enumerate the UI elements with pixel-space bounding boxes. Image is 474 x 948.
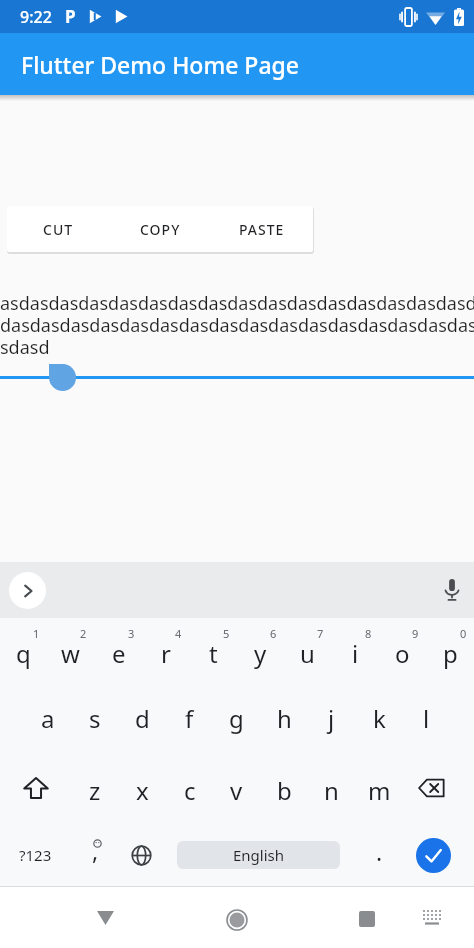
button[interactable]: j — [308, 690, 355, 746]
staticText: l — [423, 702, 430, 735]
button[interactable]: c — [166, 762, 213, 818]
button[interactable]: CUT — [7, 206, 109, 252]
staticText: w — [61, 637, 80, 670]
button[interactable]: f — [166, 690, 213, 746]
staticText: o — [395, 637, 410, 670]
button[interactable] — [131, 845, 152, 866]
button[interactable]: Flutter Demo Home Page — [0, 33, 474, 95]
staticText: z — [89, 774, 101, 807]
staticText: 3 — [128, 626, 135, 641]
staticText: Flutter Demo Home Page — [21, 49, 300, 80]
staticText: asdasdasdasdasdasdasdasdasdasdasdasdasda… — [0, 291, 474, 313]
staticText: 5 — [223, 626, 230, 641]
button[interactable] — [49, 364, 76, 391]
staticText: j — [328, 702, 335, 735]
staticText: e — [112, 637, 126, 670]
staticText: sdasd — [0, 335, 474, 357]
button[interactable] — [22, 776, 50, 800]
button[interactable]: l — [403, 690, 450, 746]
staticText: y — [254, 637, 267, 670]
staticText: , — [92, 835, 99, 866]
button[interactable]: g — [213, 690, 260, 746]
button[interactable]: PASTE — [211, 206, 313, 252]
button[interactable]: r — [142, 624, 189, 682]
staticText: k — [373, 702, 386, 735]
button[interactable]: h — [261, 690, 308, 746]
staticText: p — [443, 637, 458, 670]
staticText: 4 — [175, 626, 182, 641]
staticText: . — [376, 836, 383, 867]
staticText: n — [324, 774, 339, 807]
staticText: u — [300, 637, 315, 670]
staticText: 8 — [365, 626, 372, 641]
button[interactable]: m — [356, 762, 403, 818]
button[interactable]: i — [332, 624, 379, 682]
button[interactable]: x — [119, 762, 166, 818]
button[interactable]: , — [75, 834, 115, 876]
button[interactable] — [9, 572, 46, 609]
staticText: d — [135, 702, 150, 735]
button[interactable]: y — [237, 624, 284, 682]
staticText: s — [89, 702, 101, 735]
staticText: v — [230, 774, 243, 807]
staticText: a — [41, 702, 55, 735]
button[interactable] — [359, 911, 375, 927]
staticText: P — [65, 5, 76, 28]
button[interactable]: t — [190, 624, 237, 682]
staticText: 2 — [80, 626, 87, 641]
button[interactable]: n — [308, 762, 355, 818]
button[interactable]: v — [213, 762, 260, 818]
staticText: g — [229, 702, 244, 735]
button[interactable]: p — [427, 624, 474, 682]
staticText: c — [184, 774, 196, 807]
button[interactable]: q — [0, 624, 47, 682]
staticText: t — [209, 637, 218, 670]
button[interactable] — [418, 778, 445, 798]
button[interactable] — [226, 909, 248, 931]
staticText: PASTE — [239, 220, 285, 239]
staticText: r — [161, 637, 171, 670]
staticText: q — [16, 637, 31, 670]
button[interactable] — [416, 838, 451, 873]
staticText: ?123 — [19, 845, 52, 865]
button[interactable]: e — [95, 624, 142, 682]
staticText: 7 — [317, 626, 324, 641]
staticText: h — [277, 702, 292, 735]
staticText: b — [277, 774, 292, 807]
button[interactable]: English — [177, 841, 340, 869]
staticText: 0 — [460, 626, 467, 641]
staticText: 9 — [412, 626, 419, 641]
button[interactable]: o — [379, 624, 426, 682]
button[interactable]: . — [360, 834, 398, 876]
staticText: COPY — [140, 220, 181, 239]
button[interactable]: z — [71, 762, 118, 818]
button[interactable]: COPY — [109, 206, 211, 252]
staticText: m — [368, 774, 391, 807]
staticText: English — [233, 845, 285, 865]
button[interactable]: k — [356, 690, 403, 746]
staticText: f — [185, 702, 194, 735]
staticText: x — [136, 774, 149, 807]
staticText: 1 — [33, 626, 40, 641]
button[interactable]: a — [24, 690, 71, 746]
button[interactable]: w — [47, 624, 94, 682]
staticText: 6 — [270, 626, 277, 641]
button[interactable]: ?123 — [10, 834, 60, 876]
button[interactable] — [422, 909, 442, 925]
button[interactable]: b — [261, 762, 308, 818]
button[interactable] — [97, 911, 114, 925]
button[interactable]: s — [71, 690, 118, 746]
button[interactable]: u — [284, 624, 331, 682]
staticText: CUT — [43, 220, 74, 239]
staticText: i — [352, 637, 359, 670]
staticText: 9:22 — [20, 6, 52, 28]
button[interactable]: d — [119, 690, 166, 746]
staticText: dasdasdasdasdasdasdasdasdasdasdasdasdasd… — [0, 313, 474, 335]
